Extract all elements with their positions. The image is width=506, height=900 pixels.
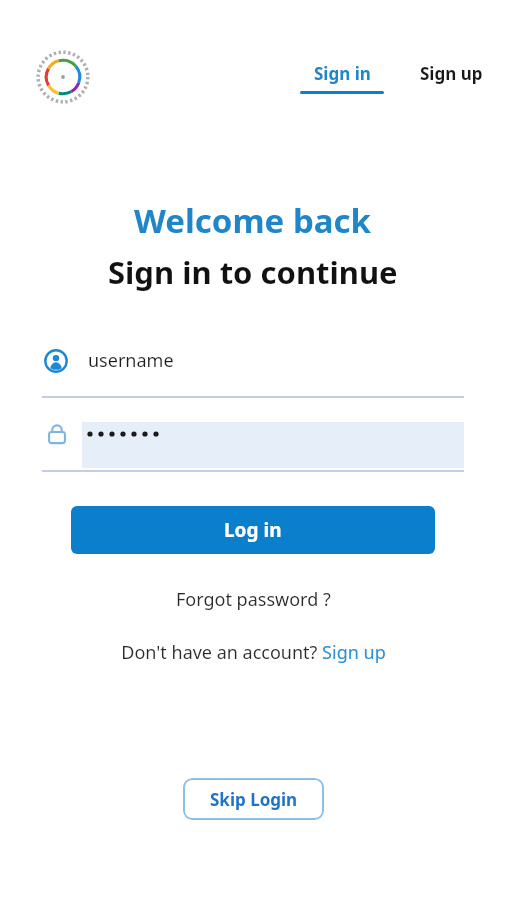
staticText: Don't have an account? Sign up xyxy=(121,640,386,665)
button[interactable]: Don't have an account? Sign up xyxy=(111,636,396,669)
staticText: Skip Login xyxy=(210,788,298,811)
staticText: Forgot password ? xyxy=(176,587,331,612)
staticText: Sign up xyxy=(420,62,483,85)
other: Password xyxy=(45,422,69,446)
button[interactable]: Forgot password ? xyxy=(166,583,341,616)
button[interactable]: Username xyxy=(42,348,464,398)
staticText: Log in xyxy=(224,517,282,543)
staticText: Sign in xyxy=(314,62,371,85)
staticText: username xyxy=(88,348,174,373)
button[interactable]: Password xyxy=(42,422,464,472)
staticText: Sign in to continue xyxy=(108,251,398,293)
button[interactable]: Sign up xyxy=(416,60,487,87)
button[interactable]: Skip Login xyxy=(183,778,324,820)
other: App logo xyxy=(36,50,90,104)
button[interactable]: Log in xyxy=(71,506,435,554)
button[interactable]: Sign in xyxy=(296,60,388,96)
staticText: Welcome back xyxy=(134,198,372,243)
other: Username xyxy=(44,349,68,373)
